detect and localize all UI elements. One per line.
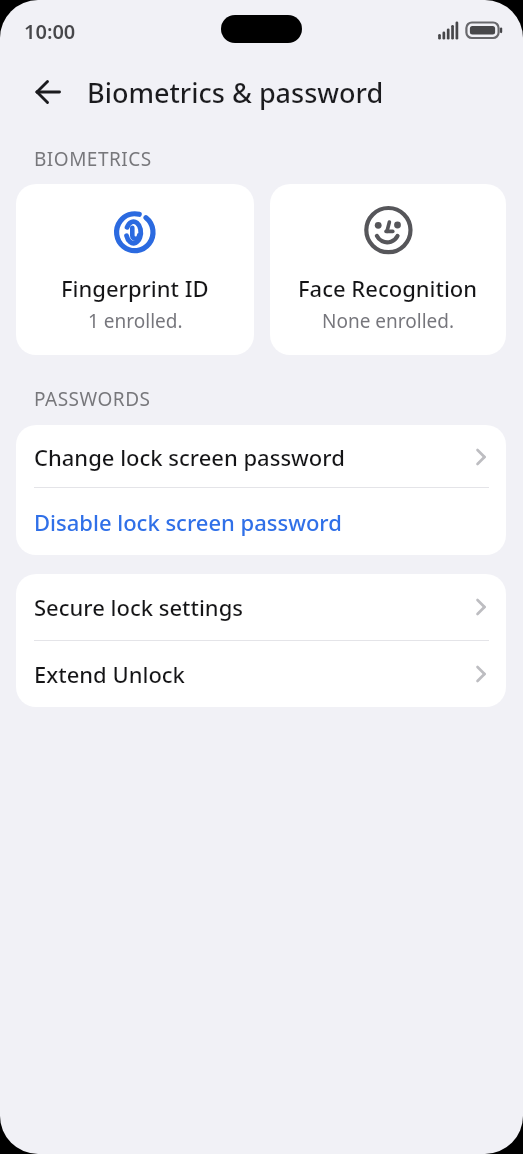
button[interactable]: Fingerprint ID: [16, 184, 254, 355]
button[interactable]: Secure lock settings: [16, 574, 506, 640]
staticText: Biometrics & password: [87, 74, 384, 111]
staticText: Extend Unlock: [34, 659, 185, 689]
staticText: BIOMETRICS: [34, 146, 152, 172]
staticText: Fingerprint ID: [61, 273, 209, 303]
staticText: Change lock screen password: [34, 442, 345, 472]
staticText: Secure lock settings: [34, 592, 243, 622]
button[interactable]: Change lock screen password: [16, 425, 506, 488]
button[interactable]: [28, 72, 68, 112]
staticText: None enrolled.: [322, 308, 455, 334]
staticText: Face Recognition: [298, 273, 478, 303]
button[interactable]: Face Recognition: [270, 184, 506, 355]
staticText: PASSWORDS: [34, 386, 151, 412]
button[interactable]: Extend Unlock: [16, 641, 506, 707]
staticText: Disable lock screen password: [34, 507, 342, 537]
button[interactable]: Disable lock screen password: [16, 488, 506, 555]
staticText: 1 enrolled.: [88, 308, 183, 334]
staticText: 10:00: [24, 18, 76, 45]
